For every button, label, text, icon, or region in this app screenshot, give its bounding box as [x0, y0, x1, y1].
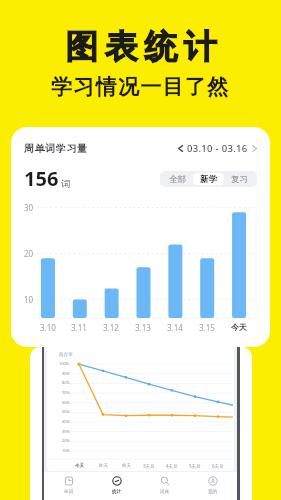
staticText: 10 — [24, 294, 34, 305]
staticText: 90% — [62, 371, 70, 376]
staticText: 3天后 — [143, 463, 155, 469]
staticText: 今天 — [75, 463, 84, 469]
staticText: 昨天 — [99, 463, 108, 469]
staticText: 5天后 — [189, 463, 201, 469]
button[interactable]: 全部 — [162, 173, 193, 185]
staticText: 留存率 — [59, 352, 73, 358]
staticText: 3.10 — [40, 322, 56, 333]
staticText: 3.15 — [199, 322, 215, 333]
staticText: 全部 — [169, 174, 186, 185]
staticText: 3.11 — [71, 322, 87, 333]
button[interactable]: 03.10 - 03.16 — [178, 142, 257, 155]
staticText: 新学 — [200, 174, 217, 185]
staticText: 复习 — [231, 174, 248, 185]
other: 我的 — [208, 476, 218, 486]
staticText: 156 — [24, 165, 59, 192]
staticText: 60% — [62, 400, 70, 405]
button[interactable]: 单词 — [44, 472, 93, 500]
staticText: 前天 — [122, 463, 131, 469]
staticText: 30% — [62, 429, 70, 434]
staticText: 20 — [24, 248, 34, 259]
button[interactable]: 我的 — [189, 472, 237, 500]
staticText: 20% — [62, 438, 70, 443]
staticText: 6天后 — [212, 463, 224, 469]
staticText: 10% — [62, 448, 70, 453]
staticText: 统计 — [112, 489, 122, 495]
staticText: 70% — [62, 390, 70, 395]
button[interactable]: 复习 — [224, 173, 255, 185]
staticText: 30 — [24, 202, 34, 213]
button[interactable]: 统计 — [93, 472, 141, 500]
staticText: 3.14 — [167, 322, 183, 333]
other: 词典 — [160, 476, 170, 486]
staticText: 今天 — [231, 322, 247, 332]
staticText: 单词 — [64, 489, 74, 495]
staticText: 80% — [62, 380, 70, 385]
staticText: 我的 — [208, 489, 218, 495]
other: 单词 — [64, 476, 74, 486]
staticText: 词典 — [160, 489, 170, 495]
other: 统计 — [112, 476, 122, 486]
staticText: 03.10 - 03.16 — [187, 142, 248, 155]
button[interactable]: 新学 — [193, 173, 224, 185]
staticText: 图表统计 — [62, 26, 220, 68]
staticText: 100% — [59, 361, 70, 366]
staticText: 词 — [61, 178, 71, 190]
staticText: 50% — [62, 409, 70, 414]
staticText: 3.13 — [135, 322, 151, 333]
staticText: 40% — [62, 419, 70, 424]
staticText: 3.12 — [103, 322, 119, 333]
button[interactable]: 词典 — [141, 472, 189, 500]
staticText: 4天后 — [166, 463, 178, 469]
staticText: 学习情况一目了然 — [51, 74, 230, 100]
staticText: 周单词学习量 — [24, 142, 88, 155]
